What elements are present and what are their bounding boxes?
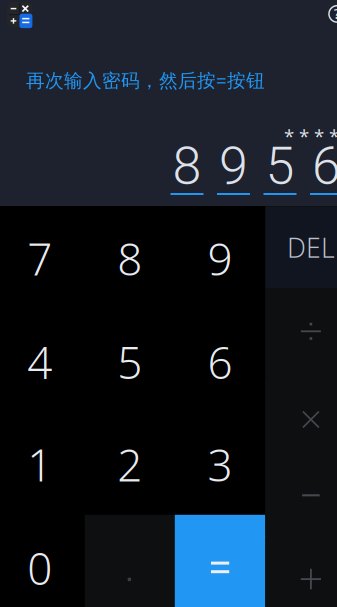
staticText: 7 xyxy=(27,229,52,288)
staticText: 4 xyxy=(27,333,52,391)
staticText: 1 xyxy=(27,435,52,494)
button[interactable]: 0 xyxy=(0,515,85,607)
button[interactable]: Multiply xyxy=(265,378,337,460)
button[interactable]: 4 xyxy=(0,310,85,412)
button[interactable]: 5 xyxy=(85,310,175,412)
staticText: 8 xyxy=(117,229,142,288)
staticText: 3 xyxy=(208,435,233,494)
staticText: 9 xyxy=(219,135,248,196)
staticText: ? xyxy=(334,4,337,23)
staticText: 8 xyxy=(172,135,201,196)
staticText: 2 xyxy=(117,435,142,494)
button[interactable]: Help xyxy=(327,4,337,24)
staticText: 0 xyxy=(27,539,52,597)
button[interactable]: 9 xyxy=(175,207,265,310)
staticText: DEL xyxy=(287,230,335,265)
staticText: 6 xyxy=(312,135,337,196)
staticText: 5 xyxy=(117,333,142,391)
button[interactable]: 7 xyxy=(0,207,85,310)
button[interactable]: Add xyxy=(265,538,337,607)
button[interactable]: 8 xyxy=(85,207,175,310)
button[interactable]: 6 xyxy=(175,310,265,412)
staticText: 9 xyxy=(208,229,233,288)
button[interactable]: Subtract xyxy=(265,455,337,535)
button[interactable]: DEL xyxy=(265,207,337,288)
staticText: 再次输入密码，然后按=按钮 xyxy=(26,68,265,92)
staticText: 6 xyxy=(208,333,233,391)
button[interactable]: Decimal point xyxy=(85,515,175,607)
button[interactable]: 3 xyxy=(175,412,265,515)
button[interactable]: Divide xyxy=(265,288,337,375)
staticText: 5 xyxy=(265,135,294,196)
button[interactable]: 2 xyxy=(85,412,175,515)
staticText: * * * * xyxy=(284,124,337,148)
button[interactable]: Equals xyxy=(175,515,265,607)
button[interactable]: 1 xyxy=(0,412,85,515)
